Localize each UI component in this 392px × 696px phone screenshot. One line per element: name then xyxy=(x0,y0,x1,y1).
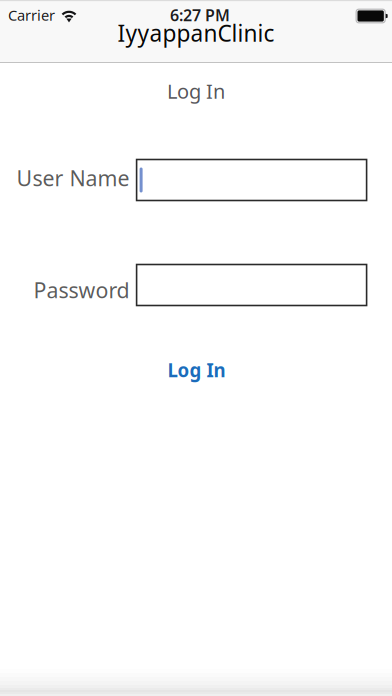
button[interactable] xyxy=(137,264,367,305)
staticText: Log In xyxy=(167,78,225,104)
staticText: Carrier xyxy=(8,5,55,25)
button[interactable] xyxy=(137,159,367,200)
button[interactable]: Log In xyxy=(150,356,244,384)
staticText: Password xyxy=(33,276,129,304)
staticText: 6:27 PM xyxy=(170,4,230,26)
staticText: IyyappanClinic xyxy=(117,18,274,48)
staticText: User Name xyxy=(16,164,129,192)
staticText: Log In xyxy=(168,358,226,382)
